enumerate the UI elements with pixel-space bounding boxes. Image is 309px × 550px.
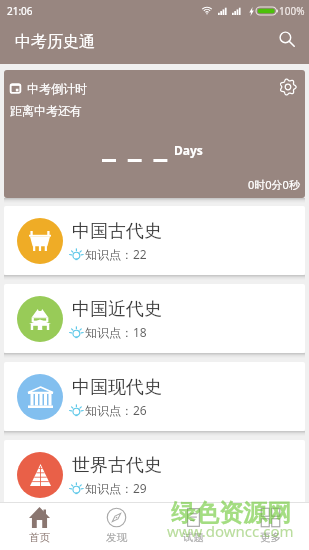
staticText: 中考历史通 <box>15 32 95 52</box>
staticText: 100% <box>279 4 305 18</box>
button[interactable]: 更多 <box>232 503 309 550</box>
button[interactable]: Settings <box>276 75 300 99</box>
button[interactable]: 世界古代史 <box>4 440 305 509</box>
staticText: 距离中考还有 <box>10 103 82 118</box>
staticText: 知识点：22 <box>85 246 147 262</box>
staticText: 中考倒计时 <box>27 81 87 96</box>
button[interactable]: Search <box>276 28 298 50</box>
staticText: 知识点：29 <box>85 480 147 496</box>
staticText: 中国现代史 <box>72 376 162 399</box>
staticText: www.downcc.com <box>167 521 294 541</box>
staticText: 首页 <box>29 531 50 544</box>
staticText: 21:06 <box>7 4 33 18</box>
button[interactable]: 中国近代史 <box>4 284 305 353</box>
button[interactable]: 发现 <box>78 503 155 550</box>
button[interactable]: 中考倒计时 <box>4 70 305 198</box>
staticText: 0时0分0秒 <box>248 177 300 192</box>
staticText: 试题 <box>183 531 204 544</box>
staticText: 发现 <box>106 531 127 544</box>
staticText: 知识点：26 <box>85 402 147 418</box>
button[interactable]: 试题 <box>155 503 232 550</box>
button[interactable]: 中国现代史 <box>4 362 305 431</box>
button[interactable]: 首页 <box>0 503 78 550</box>
staticText: 更多 <box>260 531 281 544</box>
staticText: 绿色资源网 <box>171 498 291 528</box>
staticText: 知识点：18 <box>85 324 147 340</box>
staticText: 中国近代史 <box>72 298 162 321</box>
button[interactable]: 中国古代史 <box>4 206 305 275</box>
staticText: 中国古代史 <box>72 220 162 243</box>
staticText: 世界古代史 <box>72 454 162 477</box>
staticText: Days <box>174 142 203 158</box>
